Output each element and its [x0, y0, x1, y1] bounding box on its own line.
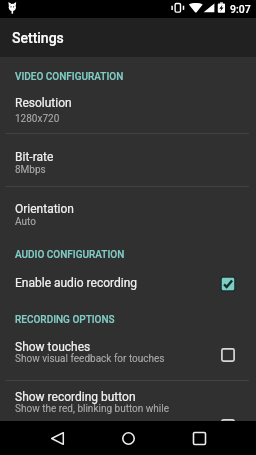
staticText: Auto — [15, 216, 36, 228]
button[interactable] — [0, 381, 256, 421]
button[interactable]: Settings — [0, 18, 256, 57]
staticText: 8Mbps — [15, 164, 46, 176]
staticText: Settings — [12, 30, 64, 46]
staticText: Show recording button — [15, 390, 136, 404]
staticText: Show visual feedback for touches — [15, 353, 165, 365]
button[interactable] — [0, 264, 256, 305]
button[interactable] — [0, 81, 256, 134]
staticText: 9:07 — [230, 3, 251, 15]
button[interactable]: Back — [44, 425, 70, 451]
staticText: RECORDING OPTIONS — [15, 314, 115, 326]
staticText: Enable audio recording — [15, 276, 138, 290]
button[interactable]: Show touches — [219, 346, 237, 364]
staticText: 1280x720 — [15, 113, 60, 125]
button[interactable]: Enable audio recording — [219, 275, 237, 293]
button[interactable] — [0, 329, 256, 381]
button[interactable]: Recent apps — [186, 425, 212, 451]
button[interactable] — [0, 134, 256, 187]
staticText: Resolution — [15, 96, 72, 110]
staticText: AUDIO CONFIGURATION — [15, 249, 125, 261]
button[interactable]: Show recording button — [219, 417, 237, 421]
staticText: Bit-rate — [15, 150, 54, 164]
staticText: VIDEO CONFIGURATION — [15, 71, 124, 83]
button[interactable]: Home — [115, 425, 141, 451]
staticText: Show touches — [15, 340, 91, 354]
button[interactable] — [0, 187, 256, 240]
staticText: Show the red, blinking button while — [15, 403, 169, 415]
staticText: Orientation — [15, 202, 74, 216]
